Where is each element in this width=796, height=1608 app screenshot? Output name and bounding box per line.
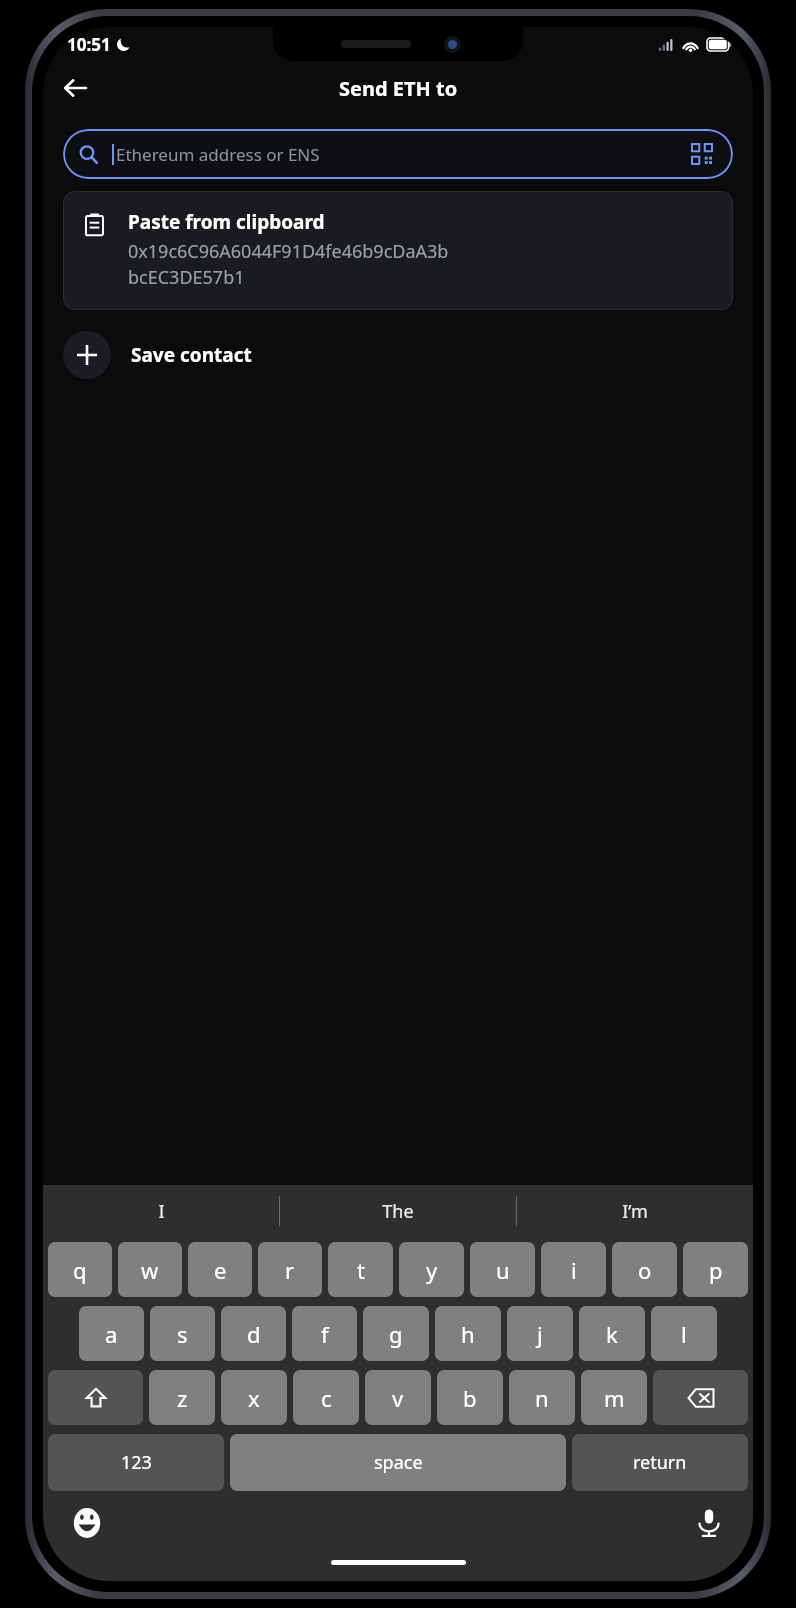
staticText: I [158,1199,165,1224]
button[interactable]: I [43,1185,279,1237]
button[interactable]: q [48,1242,112,1297]
button[interactable]: e [188,1242,252,1297]
staticText: r [285,1255,295,1285]
staticText: y [426,1255,438,1285]
button[interactable]: j [507,1306,573,1361]
staticText: f [321,1319,329,1349]
staticText: z [177,1383,188,1413]
button[interactable]: 123 [48,1434,224,1491]
button[interactable]: h [435,1306,501,1361]
button[interactable]: Voice input [691,1505,727,1541]
button[interactable]: i [541,1242,606,1297]
staticText: q [73,1255,87,1285]
button[interactable]: d [221,1306,286,1361]
button[interactable]: Emoji [69,1505,105,1541]
staticText: 123 [121,1450,152,1475]
button[interactable]: p [683,1242,748,1297]
button[interactable]: m [581,1370,647,1425]
button[interactable]: s [150,1306,215,1361]
staticText: m [604,1383,625,1413]
button[interactable]: Scan QR code [687,139,717,169]
button[interactable]: space [230,1434,566,1491]
staticText: c [321,1383,332,1413]
staticText: Send ETH to [339,75,458,102]
staticText: i [571,1255,577,1285]
button[interactable]: t [328,1242,393,1297]
button[interactable]: Back [51,64,99,112]
staticText: h [461,1319,475,1349]
staticText: k [606,1319,618,1349]
staticText: e [214,1255,227,1285]
staticText: l [681,1319,687,1349]
staticText: Ethereum address or ENS [116,143,320,166]
button[interactable]: I’m [517,1185,753,1237]
button[interactable]: y [399,1242,464,1297]
button[interactable]: Ethereum address or ENS [63,129,733,179]
button[interactable]: c [293,1370,359,1425]
staticText: v [392,1383,404,1413]
button[interactable]: Shift [48,1370,143,1425]
button[interactable]: l [651,1306,717,1361]
button[interactable]: The [280,1185,516,1237]
button[interactable]: z [149,1370,215,1425]
button[interactable]: a [79,1306,144,1361]
staticText: x [248,1383,260,1413]
staticText: t [357,1255,365,1285]
button[interactable]: v [365,1370,431,1425]
staticText: return [633,1450,687,1475]
staticText: w [141,1255,159,1285]
button[interactable]: k [579,1306,645,1361]
button[interactable]: r [258,1242,322,1297]
button[interactable]: Paste from clipboard [63,191,733,310]
staticText: Save contact [131,342,252,368]
staticText: g [389,1319,403,1349]
button[interactable]: w [118,1242,182,1297]
staticText: 10:51 [67,33,111,56]
staticText: n [535,1383,549,1413]
button[interactable]: Save contact [63,325,733,385]
button[interactable]: x [221,1370,287,1425]
staticText: u [496,1255,510,1285]
staticText: j [537,1319,543,1349]
staticText: The [382,1199,414,1224]
staticText: 0x19c6C96A6044F91D4fe46b9cDaA3b bcEC3DE5… [128,239,449,290]
button[interactable]: n [509,1370,575,1425]
staticText: I’m [622,1199,648,1224]
staticText: a [105,1319,118,1349]
staticText: o [638,1255,652,1285]
button[interactable]: f [292,1306,357,1361]
button[interactable]: Backspace [653,1370,748,1425]
staticText: p [709,1255,723,1285]
button[interactable]: g [363,1306,429,1361]
button[interactable]: b [437,1370,503,1425]
staticText: b [463,1383,477,1413]
staticText: space [374,1450,423,1475]
button[interactable]: return [572,1434,748,1491]
staticText: s [177,1319,188,1349]
button[interactable]: u [470,1242,535,1297]
staticText: Paste from clipboard [128,209,325,235]
button[interactable]: o [612,1242,677,1297]
staticText: d [247,1319,261,1349]
